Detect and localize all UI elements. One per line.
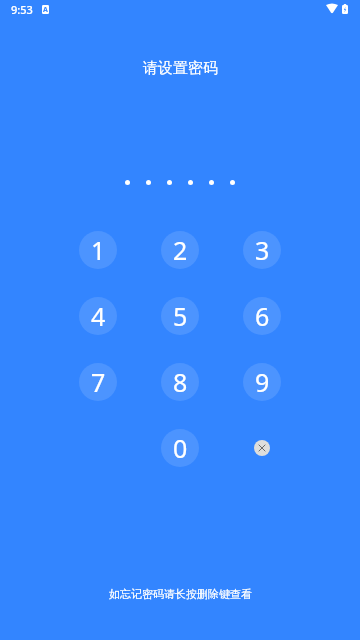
button[interactable]: Delete [243, 429, 281, 467]
staticText: 8 [173, 365, 188, 399]
staticText: 4 [91, 299, 106, 333]
button[interactable]: 如忘记密码请长按删除键查看 [103, 585, 258, 603]
staticText: 5 [173, 299, 188, 333]
button[interactable]: 0 [161, 429, 199, 467]
staticText: 7 [91, 365, 106, 399]
button[interactable]: 3 [243, 231, 281, 269]
button[interactable]: 5 [161, 297, 199, 335]
button[interactable]: 6 [243, 297, 281, 335]
staticText: 1 [91, 233, 106, 267]
staticText: 3 [255, 233, 270, 267]
staticText: 请设置密码 [143, 59, 218, 78]
button[interactable]: 9 [243, 363, 281, 401]
staticText: 9 [255, 365, 270, 399]
staticText: 9:53 [11, 2, 33, 17]
staticText: 0 [173, 431, 188, 465]
button[interactable]: 2 [161, 231, 199, 269]
button[interactable]: 4 [79, 297, 117, 335]
button[interactable]: 1 [79, 231, 117, 269]
staticText: A [43, 5, 48, 14]
button[interactable]: 8 [161, 363, 199, 401]
staticText: 6 [255, 299, 270, 333]
button[interactable]: 7 [79, 363, 117, 401]
staticText: 如忘记密码请长按删除键查看 [109, 587, 252, 601]
staticText: 2 [173, 233, 188, 267]
